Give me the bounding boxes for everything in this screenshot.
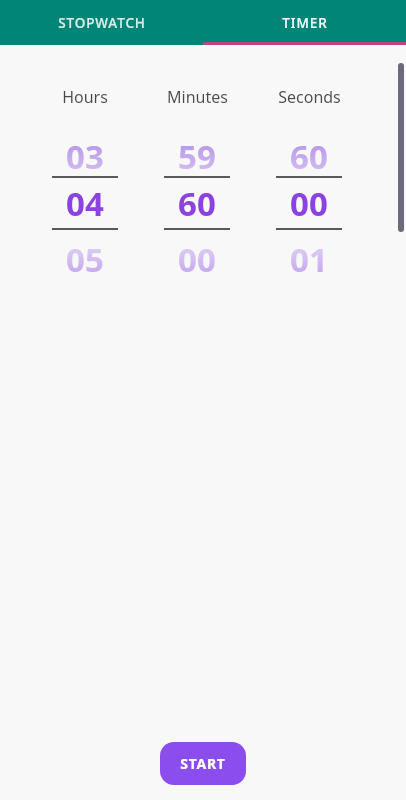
staticText: 04: [66, 181, 104, 226]
staticText: 59: [178, 134, 216, 170]
staticText: START: [180, 754, 226, 773]
staticText: 60: [290, 134, 328, 170]
staticText: 01: [290, 237, 328, 273]
button[interactable]: 59: [142, 134, 252, 170]
button[interactable]: TIMER: [203, 0, 406, 45]
staticText: STOPWATCH: [58, 14, 146, 32]
staticText: Hours: [62, 86, 108, 108]
button[interactable]: STOPWATCH: [0, 0, 203, 45]
staticText: 60: [178, 181, 216, 226]
button[interactable]: 01: [254, 237, 364, 273]
button[interactable]: 04: [30, 178, 140, 228]
staticText: TIMER: [282, 14, 328, 32]
staticText: 00: [290, 181, 328, 226]
button[interactable]: 00: [254, 178, 364, 228]
button[interactable]: START: [160, 742, 246, 785]
staticText: 03: [66, 134, 104, 170]
staticText: Minutes: [167, 86, 228, 108]
button[interactable]: 03: [30, 134, 140, 170]
staticText: 05: [66, 237, 104, 273]
other: Scroll position: [398, 63, 404, 232]
staticText: Seconds: [278, 86, 341, 108]
button[interactable]: 05: [30, 237, 140, 273]
button[interactable]: 60: [142, 178, 252, 228]
staticText: 00: [178, 237, 216, 273]
button[interactable]: 00: [142, 237, 252, 273]
button[interactable]: 60: [254, 134, 364, 170]
